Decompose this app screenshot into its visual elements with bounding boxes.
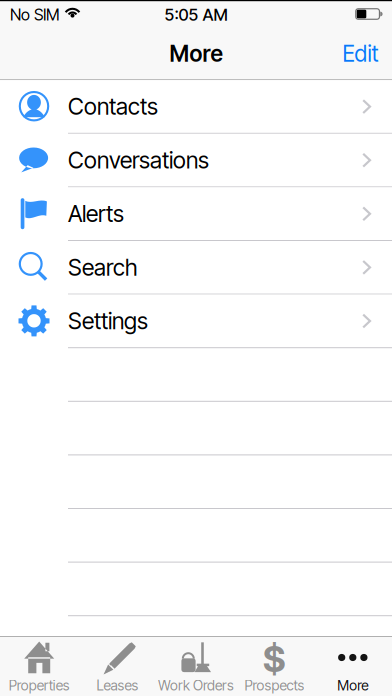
staticText: Search [68,253,137,281]
button[interactable]: More [314,637,392,694]
staticText: Work Orders [158,677,234,694]
button[interactable]: Work Orders [157,637,235,694]
button[interactable]: Alerts [0,187,392,241]
button[interactable]: Properties [0,637,78,694]
staticText: Properties [9,677,70,694]
staticText: Leases [97,677,139,694]
staticText: Conversations [68,146,209,174]
button[interactable]: $ [235,637,314,694]
button[interactable]: Conversations [0,134,392,187]
staticText: Contacts [68,93,158,120]
staticText: Alerts [68,200,124,227]
button[interactable]: Settings [0,295,392,348]
button[interactable]: Contacts [0,80,392,134]
staticText: Prospects [244,677,304,694]
staticText: No SIM [10,5,60,24]
staticText: Settings [68,307,148,335]
staticText: More [337,677,368,694]
staticText: $ [262,637,286,681]
staticText: 5:05 AM [164,5,227,25]
button[interactable]: Edit [342,40,392,67]
button[interactable]: Search [0,241,392,295]
staticText: More [169,40,222,67]
button[interactable]: Leases [78,637,157,694]
staticText: Edit [342,40,378,67]
